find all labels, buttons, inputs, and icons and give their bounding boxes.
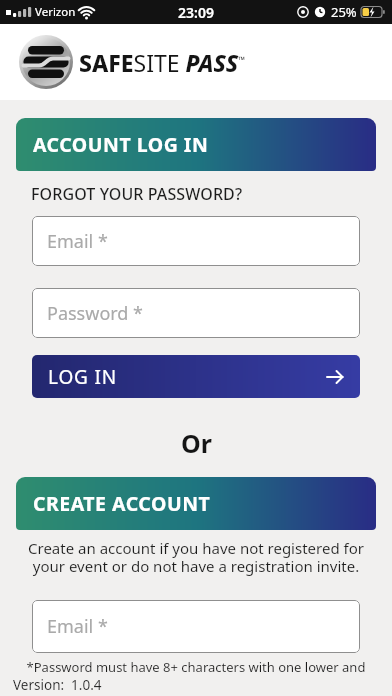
staticText: Verizon [35,4,76,20]
staticText: Version: 1.0.4 [13,676,102,694]
staticText: SAFESITE PASS™ [79,47,246,78]
button[interactable]: Email * [32,600,360,653]
button[interactable]: CREATE ACCOUNT [16,477,376,530]
staticText: Password * [47,301,144,326]
staticText: CREATE ACCOUNT [33,490,211,517]
staticText: ACCOUNT LOG IN [33,131,209,158]
staticText: 23:09 [178,3,214,22]
staticText: LOG IN [48,364,117,390]
staticText: Create an account if you have not regist… [0,538,392,577]
button[interactable]: ACCOUNT LOG IN [16,118,376,171]
button[interactable]: Email * [32,216,360,266]
staticText: Email * [47,229,108,254]
button[interactable]: Password * [32,288,360,338]
staticText: *Password must have 8+ characters with o… [0,658,392,676]
staticText: Email * [47,614,108,639]
staticText: FORGOT YOUR PASSWORD? [31,183,243,205]
staticText: 25% [331,3,357,21]
staticText: Or [181,426,212,460]
button[interactable]: LOG IN [32,355,360,398]
